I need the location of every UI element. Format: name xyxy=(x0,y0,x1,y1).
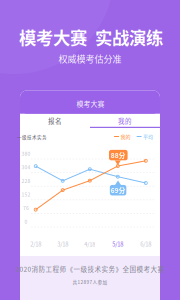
staticText: 一级技术实务 xyxy=(17,134,47,140)
staticText: 共12897人参加 xyxy=(72,279,107,285)
staticText: 2020消防工程师《一级技术实务》全国模考大赛 xyxy=(15,264,164,274)
button[interactable]: 报名 xyxy=(20,114,90,128)
staticText: 152 xyxy=(21,191,30,198)
staticText: 模考大赛 xyxy=(76,99,104,109)
staticText: 模考大赛 实战演练 xyxy=(19,24,163,50)
staticText: 平均 xyxy=(143,133,153,140)
button[interactable]: 我的 xyxy=(90,114,160,128)
staticText: 69分 xyxy=(111,185,126,195)
staticText: 380 xyxy=(21,150,30,157)
staticText: 3/18 xyxy=(57,240,68,248)
staticText: 0 xyxy=(24,218,27,225)
staticText: 我的 xyxy=(118,116,132,126)
staticText: 5/18 xyxy=(112,240,123,248)
staticText: 我的 xyxy=(120,133,130,140)
staticText: 76 xyxy=(23,204,29,211)
staticText: 报名 xyxy=(48,116,62,126)
staticText: 4/18 xyxy=(84,240,95,248)
staticText: 6/18 xyxy=(140,240,151,248)
staticText: 88分 xyxy=(111,150,126,160)
staticText: 权威模考估分准 xyxy=(58,52,121,65)
staticText: 228 xyxy=(21,177,30,184)
staticText: 304 xyxy=(21,163,30,171)
staticText: 2/18 xyxy=(30,240,41,248)
